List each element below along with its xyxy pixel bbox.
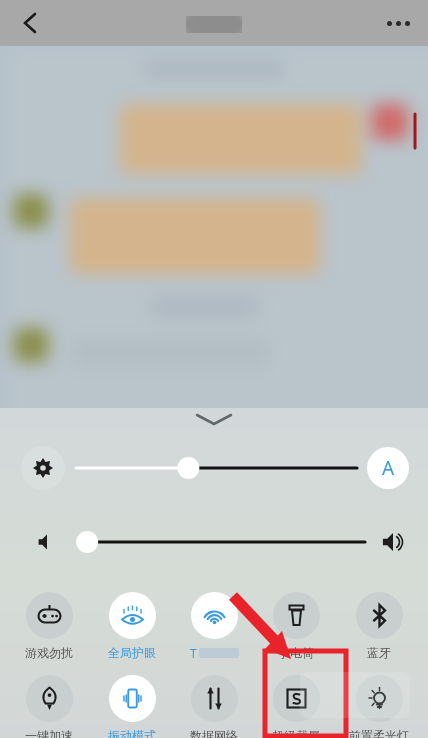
button[interactable]: 超级截屏 bbox=[257, 675, 335, 738]
button[interactable]: 数据网络 bbox=[175, 675, 253, 738]
button[interactable]: T bbox=[175, 592, 253, 661]
button[interactable]: 振动模式 bbox=[93, 675, 171, 738]
button[interactable]: 蓝牙 bbox=[340, 592, 418, 660]
button[interactable]: 一键加速 bbox=[10, 675, 88, 738]
button[interactable]: Brightness settings bbox=[21, 446, 65, 490]
staticText: 数据网络 bbox=[190, 728, 238, 738]
staticText: 全局护眼 bbox=[108, 645, 156, 660]
button[interactable]: 游戏勿扰 bbox=[10, 592, 88, 660]
staticText: 游戏勿扰 bbox=[25, 645, 73, 660]
button[interactable]: Auto brightness bbox=[367, 447, 409, 489]
button[interactable]: Max volume bbox=[377, 526, 409, 558]
staticText: T bbox=[190, 645, 197, 661]
staticText: 前置柔光灯 bbox=[349, 728, 409, 738]
staticText: 手电筒 bbox=[278, 645, 314, 660]
staticText: 一键加速 bbox=[25, 728, 73, 738]
button[interactable]: 前置柔光灯 bbox=[340, 675, 418, 738]
button[interactable]: Back bbox=[8, 1, 52, 45]
button[interactable]: Mute bbox=[33, 528, 61, 556]
button[interactable]: More options bbox=[376, 1, 420, 45]
button[interactable]: 全局护眼 bbox=[93, 592, 171, 660]
staticText: 蓝牙 bbox=[367, 645, 391, 660]
button[interactable]: Collapse panel bbox=[0, 408, 428, 430]
staticText: 振动模式 bbox=[108, 728, 156, 738]
button[interactable]: 手电筒 bbox=[257, 592, 335, 660]
staticText: A bbox=[382, 455, 395, 481]
staticText: 超级截屏 bbox=[272, 728, 320, 738]
